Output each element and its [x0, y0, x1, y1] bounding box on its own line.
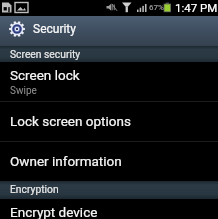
button[interactable]: Lock screen options	[0, 102, 218, 141]
button[interactable]: Screen lock	[0, 62, 218, 102]
staticText: Encryption	[10, 183, 59, 195]
staticText: Swipe	[10, 85, 37, 97]
staticText: Encrypt device	[10, 204, 98, 219]
staticText: Security	[33, 22, 76, 36]
staticText: Screen lock	[10, 67, 80, 83]
staticText: 67%	[149, 3, 164, 12]
button[interactable]: Security	[0, 16, 218, 46]
staticText: Screen security	[10, 48, 81, 60]
staticText: Lock screen options	[10, 113, 131, 129]
staticText: Owner information	[10, 153, 122, 169]
staticText: 1:47 PM	[175, 1, 218, 14]
button[interactable]: Owner information	[0, 142, 218, 181]
button[interactable]: Encrypt device	[0, 199, 218, 219]
